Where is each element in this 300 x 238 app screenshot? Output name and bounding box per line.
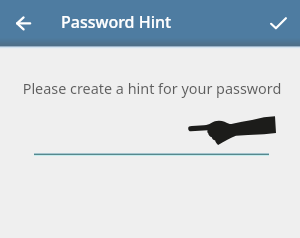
button[interactable]: Password hint input field (34, 153, 269, 156)
button[interactable]: Navigate up (9, 9, 38, 38)
button[interactable]: Save password hint (264, 9, 293, 38)
staticText: Please create a hint for your password (2, 79, 300, 99)
staticText: Password Hint (61, 11, 172, 33)
